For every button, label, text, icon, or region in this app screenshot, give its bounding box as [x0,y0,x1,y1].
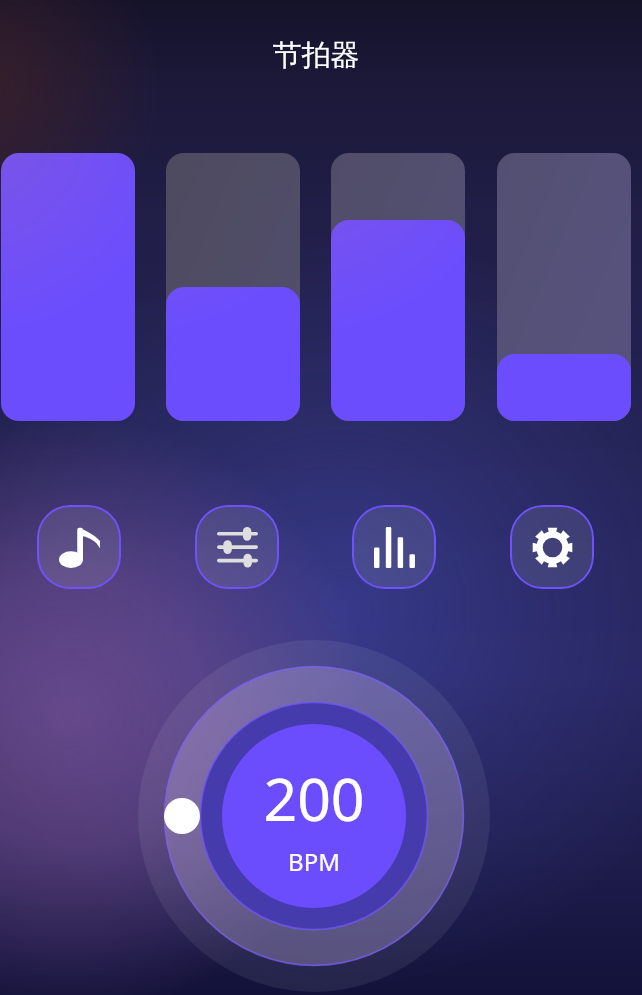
button[interactable]: Beat pattern [352,505,436,589]
button[interactable] [1,153,135,421]
staticText: 节拍器 [0,37,637,74]
staticText: 200 [134,758,494,838]
button[interactable]: Tempo [37,505,121,589]
button[interactable] [331,153,465,421]
button[interactable]: Tempo dial, 200 BPM [134,636,494,995]
button[interactable] [497,153,631,421]
button[interactable]: Settings [510,505,594,589]
button[interactable]: Sound settings [195,505,279,589]
staticText: BPM [134,845,494,878]
button[interactable] [166,153,300,421]
